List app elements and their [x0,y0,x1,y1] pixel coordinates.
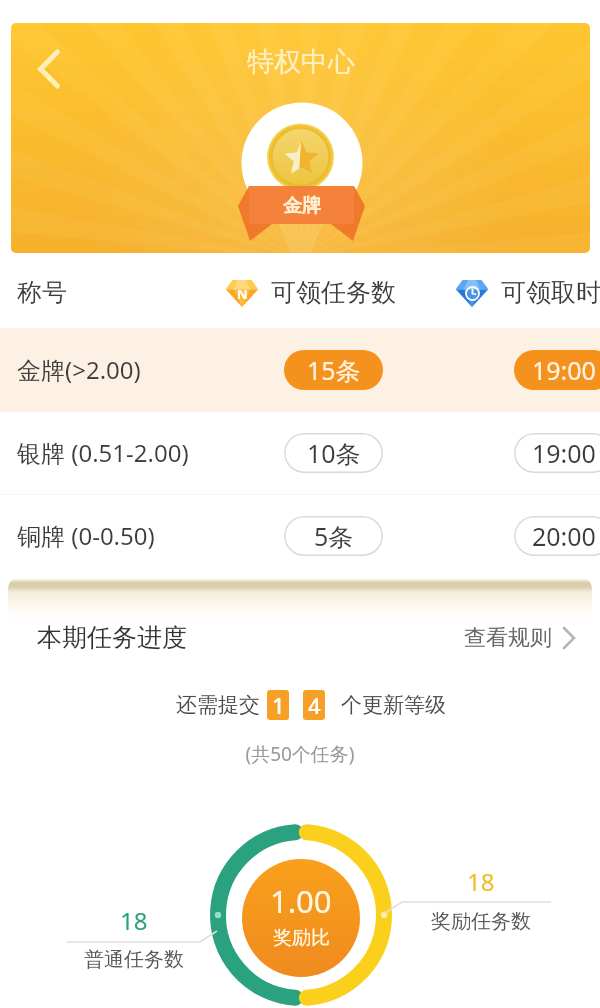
button[interactable]: 5条 [284,516,383,556]
staticText: 本期任务进度 [37,622,187,653]
button[interactable]: 银牌 (0.51-2.00) [0,411,600,494]
staticText: (共50个任务) [8,741,592,767]
staticText: N [237,285,248,303]
staticText: 特权中心 [247,45,355,79]
staticText: 19:00 [532,353,596,387]
staticText: 银牌 (0.51-2.00) [17,436,189,469]
button[interactable]: 金牌(>2.00) [0,328,600,411]
button[interactable]: 19:00 [514,433,600,473]
staticText: 15条 [307,353,361,387]
staticText: 18 [120,904,148,937]
staticText: 个更新等级 [341,692,446,718]
staticText: 18 [467,865,495,898]
staticText: 查看规则 [464,624,552,652]
staticText: 奖励任务数 [431,909,531,934]
staticText: 铜牌 (0-0.50) [17,519,155,552]
button[interactable]: 20:00 [514,516,600,556]
button[interactable]: 10条 [284,433,383,473]
staticText: 19:00 [532,436,596,470]
staticText: 1 [272,690,285,720]
staticText: 4 [308,690,321,720]
staticText: 20:00 [532,519,596,553]
staticText: 金牌 [283,194,321,218]
button[interactable]: 19:00 [514,350,600,390]
button[interactable]: 15条 [284,350,383,390]
staticText: 可领取时 [501,277,600,308]
staticText: 普通任务数 [84,947,184,972]
staticText: 奖励比 [273,926,330,950]
staticText: 称号 [17,277,67,308]
button[interactable]: Back [23,43,75,95]
staticText: 5条 [314,519,354,553]
staticText: 1.00 [270,880,332,922]
button[interactable]: 查看规则 [464,624,576,652]
staticText: 可领任务数 [271,277,396,308]
staticText: 10条 [307,436,361,470]
staticText: 金牌(>2.00) [17,353,141,386]
staticText: 还需提交 [176,692,260,718]
button[interactable]: 铜牌 (0-0.50) [0,494,600,577]
